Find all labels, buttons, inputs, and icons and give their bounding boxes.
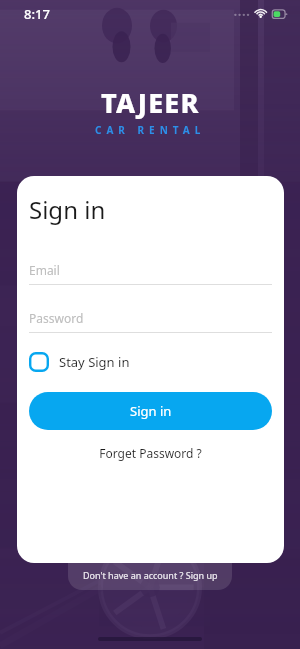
button[interactable]: Don't have an account ? Sign up [68, 542, 232, 590]
button[interactable]: Password [29, 310, 272, 333]
button[interactable]: Sign in [29, 392, 272, 430]
staticText: TAJEER [101, 84, 200, 121]
staticText: CAR RENTAL [95, 123, 206, 137]
staticText: 8:17 [24, 5, 50, 23]
button[interactable]: Forget Password ? [95, 441, 206, 465]
staticText: Sign in [29, 193, 106, 226]
staticText: Stay Sign in [59, 353, 130, 371]
button[interactable]: Stay Sign in [29, 352, 272, 372]
staticText: Don't have an account ? Sign up [83, 569, 218, 581]
button[interactable]: Email [29, 262, 272, 285]
staticText: Email [29, 262, 60, 278]
staticText: Sign in [130, 402, 172, 420]
staticText: Password [29, 310, 84, 326]
